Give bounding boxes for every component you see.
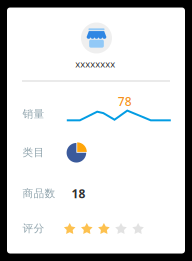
staticText: xxxxxxxx: [75, 58, 115, 70]
staticText: 18: [71, 185, 85, 201]
staticText: 78: [118, 93, 132, 109]
staticText: 评分: [22, 222, 44, 235]
staticText: 销量: [22, 107, 44, 120]
staticText: 类目: [22, 146, 44, 159]
staticText: 商品数: [22, 187, 55, 200]
